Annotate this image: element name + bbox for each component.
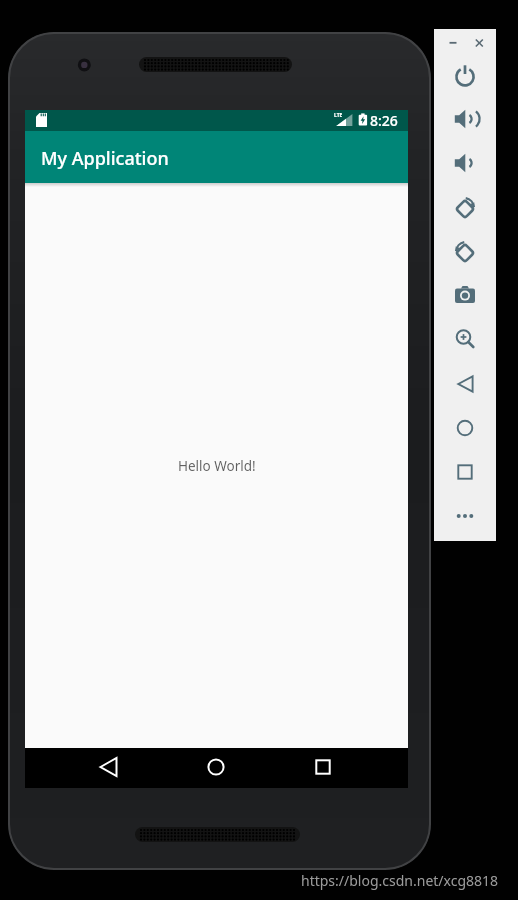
staticText: My Application	[41, 146, 169, 171]
button[interactable]	[450, 413, 480, 443]
button[interactable]	[450, 148, 480, 178]
button[interactable]	[450, 324, 480, 354]
button[interactable]	[471, 35, 487, 51]
button[interactable]	[450, 280, 480, 310]
staticText: https://blog.csdn.net/xcg8818	[301, 871, 499, 890]
staticText: Hello World!	[178, 457, 256, 475]
button[interactable]	[450, 457, 480, 487]
button[interactable]	[450, 61, 480, 91]
button[interactable]	[199, 751, 233, 785]
button[interactable]	[450, 369, 480, 399]
button[interactable]	[450, 237, 480, 267]
button[interactable]	[450, 104, 480, 134]
staticText: 8:26	[370, 111, 398, 130]
button[interactable]	[92, 751, 126, 785]
button[interactable]	[306, 751, 340, 785]
button[interactable]	[450, 193, 480, 223]
button[interactable]	[450, 501, 480, 531]
button[interactable]: My Application	[25, 131, 408, 183]
staticText: LTE	[334, 112, 343, 119]
button[interactable]	[445, 35, 461, 51]
